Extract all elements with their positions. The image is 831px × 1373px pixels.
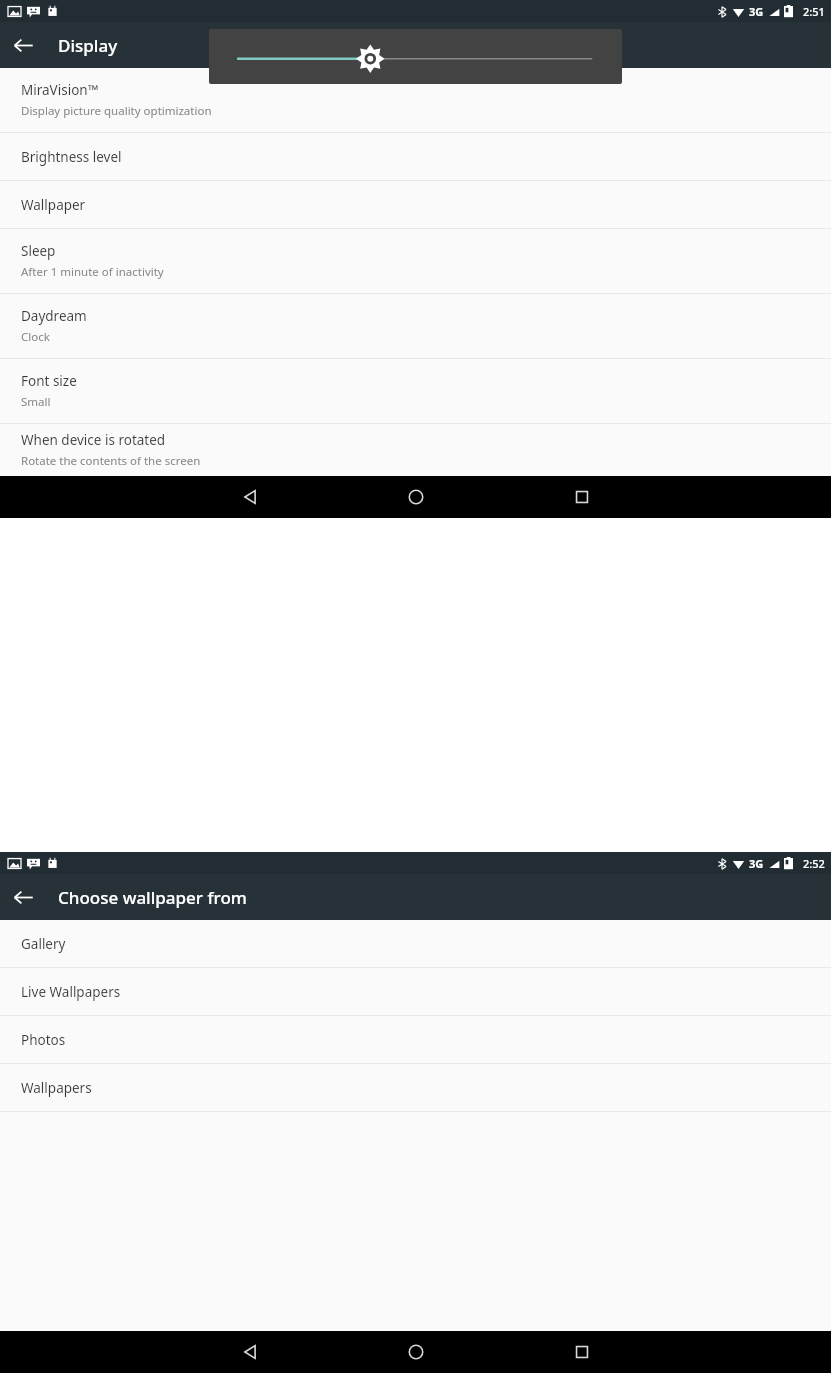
button[interactable]: Navigate up: [0, 22, 46, 68]
staticText: Photos: [21, 1031, 66, 1049]
staticText: Display: [58, 34, 118, 57]
button[interactable]: Recent apps: [499, 1331, 665, 1373]
staticText: Gallery: [21, 935, 66, 953]
button[interactable]: Gallery: [0, 920, 831, 967]
staticText: Choose wallpaper from: [58, 886, 247, 909]
button[interactable]: Wallpapers: [0, 1064, 831, 1111]
button[interactable]: Recent apps: [499, 476, 665, 518]
staticText: 2:51: [803, 4, 825, 19]
button[interactable]: Photos: [0, 1016, 831, 1063]
staticText: Display picture quality optimization: [21, 103, 212, 119]
staticText: Rotate the contents of the screen: [21, 453, 201, 469]
button[interactable]: Home: [333, 476, 499, 518]
staticText: Daydream: [21, 307, 87, 325]
staticText: Brightness level: [21, 148, 122, 166]
staticText: Live Wallpapers: [21, 983, 121, 1001]
button[interactable]: Back: [167, 476, 333, 518]
button[interactable]: Sleep: [0, 229, 831, 293]
staticText: 3G: [749, 856, 764, 871]
staticText: Sleep: [21, 242, 56, 260]
staticText: Font size: [21, 372, 77, 390]
button[interactable]: Back: [167, 1331, 333, 1373]
staticText: MiraVision™: [21, 81, 99, 99]
button[interactable]: Live Wallpapers: [0, 968, 831, 1015]
staticText: When device is rotated: [21, 431, 166, 449]
button[interactable]: When device is rotated: [0, 424, 831, 476]
staticText: After 1 minute of inactivity: [21, 264, 164, 280]
staticText: Wallpaper: [21, 196, 86, 214]
button[interactable]: Navigate up: [0, 874, 46, 920]
button[interactable]: Font size: [0, 359, 831, 423]
button[interactable]: MiraVision™: [0, 68, 831, 132]
staticText: Small: [21, 394, 51, 410]
button[interactable]: Daydream: [0, 294, 831, 358]
button[interactable]: Brightness slider: [209, 29, 622, 84]
button[interactable]: Brightness level: [0, 133, 831, 180]
button[interactable]: Home: [333, 1331, 499, 1373]
staticText: Clock: [21, 329, 50, 345]
staticText: 2:52: [803, 856, 825, 871]
button[interactable]: Wallpaper: [0, 181, 831, 228]
staticText: Wallpapers: [21, 1079, 92, 1097]
staticText: 3G: [749, 4, 764, 19]
